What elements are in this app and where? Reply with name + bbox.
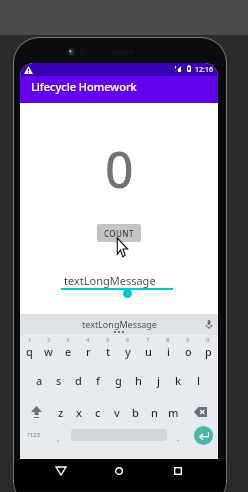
staticText: 6 [126,336,130,344]
staticText: 1 [28,336,32,344]
staticText: q [26,344,33,359]
button[interactable]: Voice input [202,318,215,331]
staticText: m [168,405,179,420]
staticText: r [86,344,91,359]
button[interactable]: 8 [158,336,178,360]
staticText: v [114,405,120,420]
button[interactable]: l [188,368,208,392]
staticText: j [157,373,160,388]
button[interactable]: c [88,400,107,424]
staticText: t [106,344,111,359]
button[interactable]: j [148,368,168,392]
staticText: 5 [106,336,110,344]
staticText: textLongMessage [82,318,157,330]
button[interactable]: textLongMessage [61,273,173,305]
button[interactable]: x [70,400,88,424]
staticText: FREECOM [109,50,133,56]
staticText: ?123 [27,431,40,439]
staticText: x [76,405,82,420]
staticText: p [205,344,212,359]
staticText: e [65,344,72,359]
button[interactable]: v [107,400,126,424]
button[interactable]: a [30,368,49,392]
button[interactable]: 5 [98,336,118,360]
staticText: n [151,405,158,420]
button[interactable]: , [46,421,71,449]
button[interactable]: COUNT [97,224,141,242]
button[interactable]: m [164,400,183,424]
button[interactable]: d [68,368,88,392]
button[interactable]: 0 [198,336,218,360]
staticText: . [177,432,180,443]
button[interactable]: f [88,368,108,392]
staticText: h [135,373,142,388]
staticText: u [145,344,152,359]
staticText: 7 [146,336,150,344]
staticText: d [75,373,82,388]
button[interactable]: 6 [118,336,138,360]
button[interactable]: Shift [20,400,52,424]
button[interactable]: h [128,368,148,392]
button[interactable]: k [168,368,188,392]
staticText: w [44,344,53,359]
button[interactable]: 2 [39,336,58,360]
button[interactable]: Enter [194,426,213,445]
staticText: 4 [86,336,90,344]
staticText: , [57,432,60,443]
button[interactable]: 1 [20,336,39,360]
staticText: 0 [105,135,134,203]
button[interactable]: b [126,400,145,424]
button[interactable]: g [108,368,128,392]
staticText: y [125,344,131,359]
staticText: i [167,344,170,359]
staticText: f [96,373,100,388]
button[interactable]: Lifecycle Homework [20,76,218,103]
staticText: 2 [47,336,51,344]
staticText: k [175,373,182,388]
button[interactable]: 9 [178,336,198,360]
staticText: b [132,405,139,420]
staticText: 12:16 [195,65,213,75]
button[interactable]: z [52,400,70,424]
staticText: c [95,405,101,420]
staticText: textLongMessage [64,273,156,288]
button[interactable]: ?123 [20,421,46,449]
button[interactable]: 7 [138,336,158,360]
button[interactable]: 4 [78,336,98,360]
staticText: l [197,373,200,388]
button[interactable]: 3 [58,336,78,360]
staticText: 8 [166,336,170,344]
button[interactable]: Recents [170,463,186,479]
button[interactable]: Home [111,463,127,479]
staticText: 9 [186,336,190,344]
staticText: COUNT [104,228,134,239]
staticText: o [185,344,192,359]
button[interactable]: n [145,400,164,424]
staticText: g [115,373,122,388]
staticText: Lifecycle Homework [31,79,137,94]
staticText: z [58,405,64,420]
button[interactable]: Backspace [183,400,218,424]
staticText: s [56,373,62,388]
button[interactable]: s [49,368,68,392]
button[interactable]: Back [53,463,69,479]
staticText: a [36,373,43,388]
staticText: 0 [206,336,210,344]
staticText: 3 [66,336,70,344]
